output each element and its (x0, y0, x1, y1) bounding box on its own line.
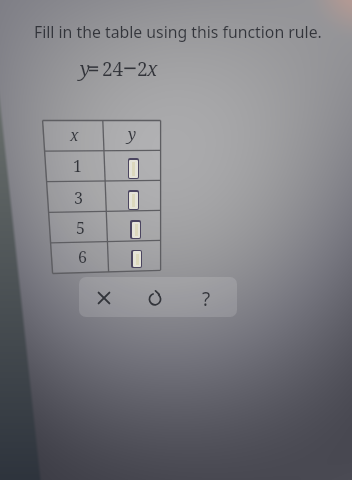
button[interactable]: Answer input box (128, 158, 139, 179)
staticText: y (80, 56, 91, 82)
staticText: x (70, 124, 79, 145)
staticText: x (147, 56, 158, 82)
staticText: 1 (73, 155, 82, 177)
button[interactable]: Undo (145, 288, 165, 308)
button[interactable]: Help (196, 286, 216, 306)
button[interactable]: Answer input box (131, 250, 142, 268)
button[interactable]: Clear (94, 288, 114, 308)
button[interactable]: Answer input box (128, 190, 139, 210)
staticText: ? (202, 286, 211, 306)
staticText: 2 (137, 56, 148, 82)
button[interactable]: Answer input box (130, 220, 141, 239)
staticText: 3 (74, 187, 83, 209)
staticText: 5 (76, 217, 85, 239)
staticText: y (128, 123, 137, 144)
staticText: 6 (78, 246, 87, 268)
staticText: 24 (102, 56, 124, 82)
staticText: Fill in the table using this function ru… (34, 21, 322, 43)
